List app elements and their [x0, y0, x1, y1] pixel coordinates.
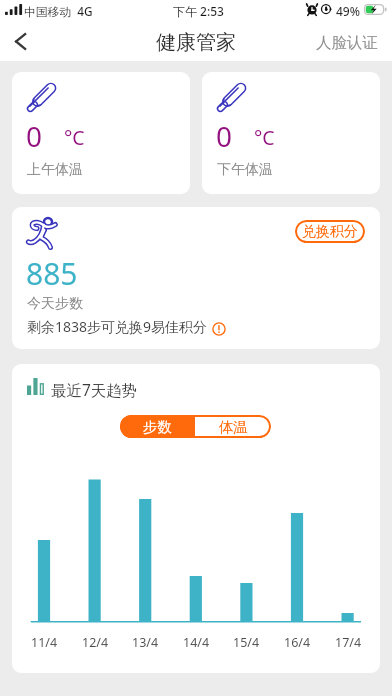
staticText: 下午体温 [217, 161, 273, 179]
staticText: 剩余1838步可兑换9易佳积分 [27, 317, 208, 336]
staticText: 步数 [143, 418, 172, 436]
staticText: 健康管家 [156, 30, 236, 55]
staticText: 0 [216, 117, 233, 155]
staticText: 13/4 [132, 634, 159, 650]
button[interactable]: 0 [12, 72, 190, 194]
staticText: 上午体温 [27, 161, 83, 179]
staticText: 11/4 [31, 634, 58, 650]
staticText: °C [254, 124, 275, 151]
staticText: 兑换积分 [302, 223, 358, 241]
staticText: 17/4 [335, 634, 362, 650]
staticText: 今天步数 [27, 295, 83, 313]
button[interactable]: 步数 [120, 415, 195, 438]
staticText: 15/4 [233, 634, 260, 650]
staticText: 最近7天趋势 [51, 379, 138, 400]
staticText: 下午 2:53 [173, 3, 224, 19]
staticText: 885 [26, 253, 78, 294]
button[interactable]: 兑换积分 [295, 220, 365, 243]
staticText: 49% [336, 3, 360, 19]
staticText: 0 [26, 117, 43, 155]
staticText: 16/4 [284, 634, 311, 650]
staticText: °C [64, 124, 85, 151]
button[interactable]: 0 [202, 72, 380, 194]
button[interactable]: 体温 [195, 415, 271, 438]
staticText: 人脸认证 [316, 33, 378, 53]
staticText: 12/4 [82, 634, 109, 650]
button[interactable]: Back [0, 22, 44, 61]
button[interactable]: 人脸认证 [316, 33, 378, 53]
staticText: 14/4 [183, 634, 210, 650]
staticText: 中国移动 4G [24, 3, 93, 19]
staticText: 体温 [219, 418, 248, 436]
